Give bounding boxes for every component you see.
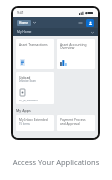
staticText: Invoice Scan bbox=[19, 79, 36, 83]
button[interactable]: My Inbox Extended bbox=[16, 115, 54, 131]
button[interactable]: Asset Transactions bbox=[16, 39, 54, 69]
staticText: 9:41 bbox=[17, 10, 24, 15]
staticText: IN_JD_00000001 bbox=[19, 98, 39, 101]
button[interactable]: Home bbox=[17, 20, 31, 26]
staticText: Asset Accounting Overview bbox=[60, 42, 92, 50]
staticText: My Inbox Extended bbox=[19, 118, 48, 122]
staticText: Access Your Applications bbox=[0, 157, 112, 167]
staticText: Upload bbox=[19, 75, 31, 79]
staticText: Asset Transactions bbox=[19, 42, 48, 46]
button[interactable]: Asset Accounting Overview bbox=[57, 39, 95, 69]
staticText: Payment Process and Approval bbox=[60, 118, 92, 126]
button[interactable]: Payment Process and Approval bbox=[57, 115, 95, 131]
staticText: My Home bbox=[17, 30, 32, 34]
staticText: Home bbox=[19, 21, 29, 25]
button[interactable]: More options bbox=[78, 21, 83, 25]
staticText: My Apps bbox=[16, 108, 31, 113]
button[interactable]: Upload bbox=[16, 72, 54, 104]
button[interactable]: My Home bbox=[13, 28, 98, 36]
button[interactable]: Profile bbox=[86, 19, 94, 27]
staticText: 15 items bbox=[19, 122, 30, 126]
